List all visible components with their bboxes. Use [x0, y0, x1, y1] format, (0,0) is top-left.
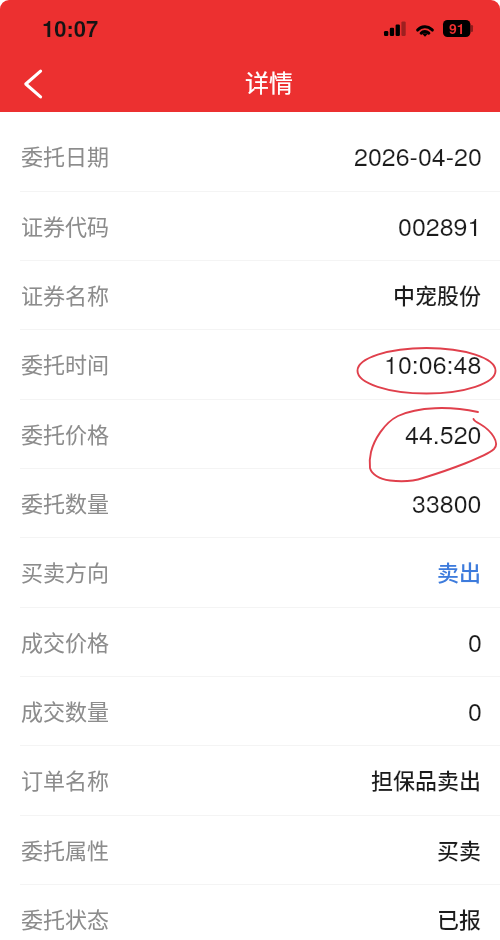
staticText: 委托时间	[21, 347, 110, 379]
staticText: 44.520	[405, 415, 482, 451]
staticText: 委托状态	[21, 902, 110, 934]
staticText: 成交价格	[21, 625, 110, 657]
button[interactable]: 成交价格	[0, 608, 500, 676]
button[interactable]: 证券名称	[0, 261, 500, 329]
staticText: 委托数量	[21, 486, 110, 518]
button[interactable]: 委托日期	[0, 112, 500, 191]
staticText: 91	[449, 18, 465, 38]
staticText: 证券代码	[21, 209, 110, 241]
staticText: 中宠股份	[393, 278, 482, 310]
button[interactable]: 委托属性	[0, 816, 500, 884]
staticText: 担保品卖出	[371, 763, 482, 795]
staticText: 委托日期	[21, 139, 110, 171]
staticText: 33800	[412, 484, 482, 520]
staticText: 订单名称	[21, 763, 110, 795]
staticText: 0	[468, 623, 482, 659]
staticText: 买卖	[437, 833, 482, 865]
staticText: 详情	[245, 64, 293, 99]
staticText: 2026-04-20	[354, 137, 482, 173]
staticText: 10:06:48	[384, 345, 482, 381]
button[interactable]: 委托价格	[0, 400, 500, 468]
button[interactable]: 订单名称	[0, 746, 500, 814]
staticText: 证券名称	[21, 278, 110, 310]
button[interactable]: 委托数量	[0, 469, 500, 537]
staticText: 10:07	[42, 12, 99, 44]
staticText: 委托属性	[21, 833, 110, 865]
staticText: 002891	[398, 207, 482, 243]
button[interactable]: 委托时间	[0, 330, 500, 398]
button[interactable]: Back	[6, 57, 60, 111]
staticText: 成交数量	[21, 694, 110, 726]
staticText: 卖出	[437, 555, 482, 587]
button[interactable]: 委托状态	[0, 885, 500, 940]
staticText: 委托价格	[21, 417, 110, 449]
button[interactable]: 买卖方向	[0, 538, 500, 606]
staticText: 买卖方向	[21, 555, 110, 587]
button[interactable]: 证券代码	[0, 192, 500, 260]
button[interactable]: 成交数量	[0, 677, 500, 745]
staticText: 已报	[437, 902, 482, 934]
staticText: 0	[468, 692, 482, 728]
